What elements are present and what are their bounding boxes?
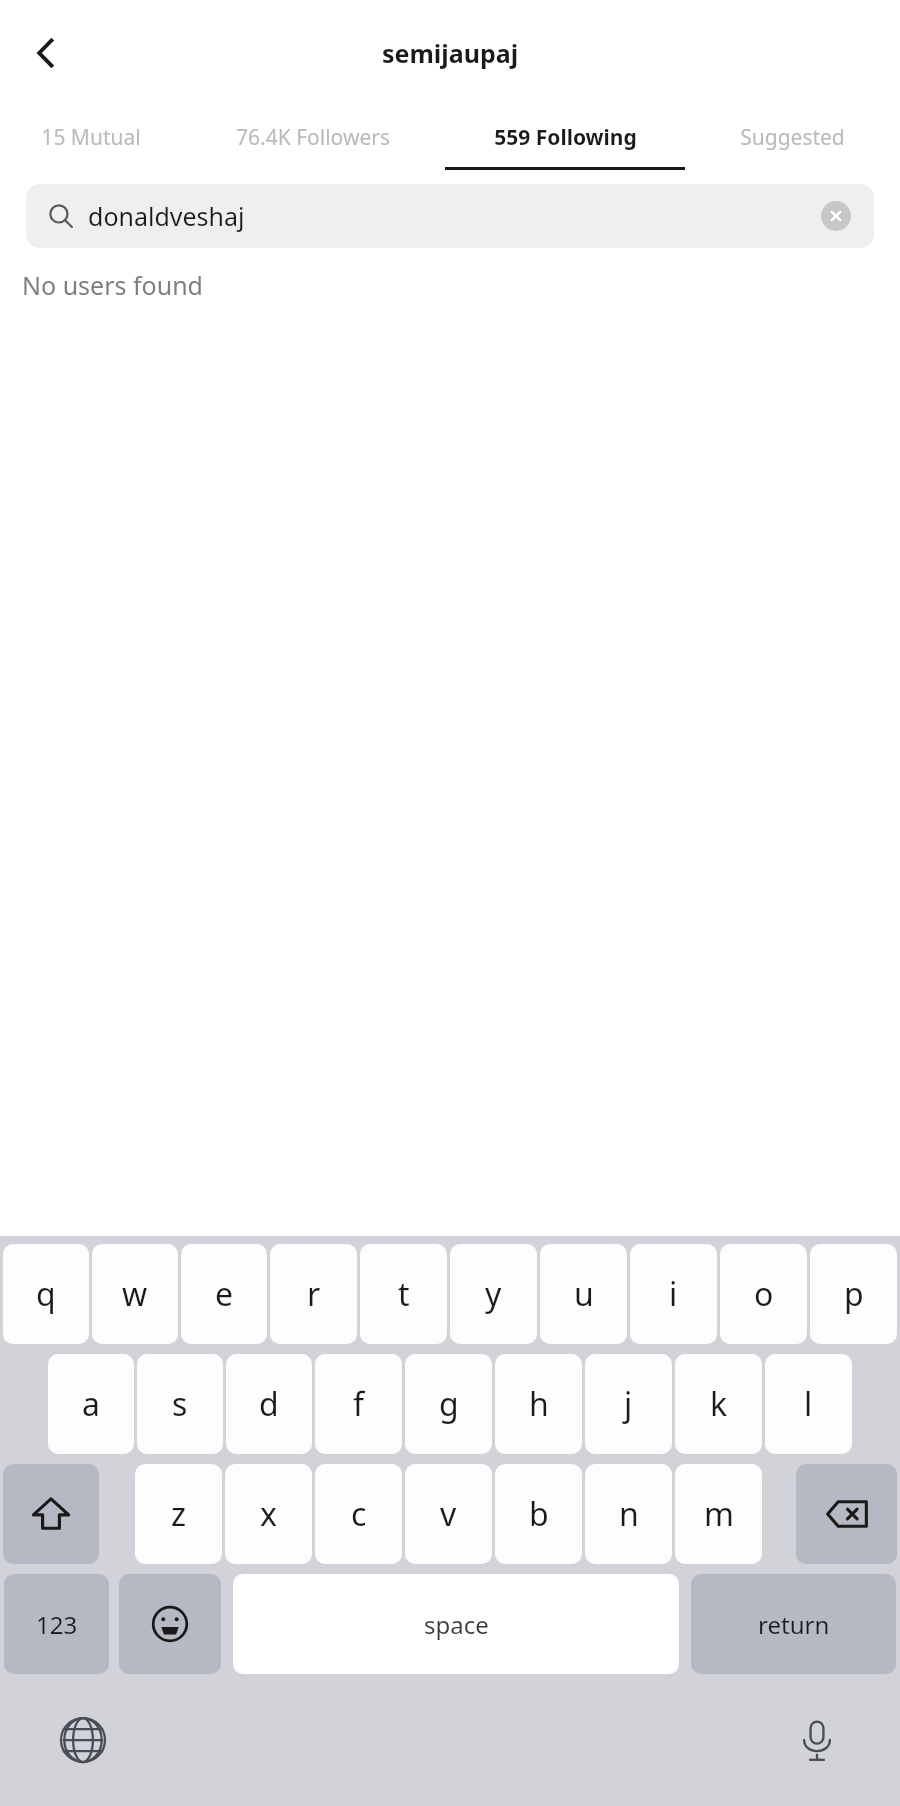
button[interactable]: w: [92, 1244, 178, 1344]
staticText: No users found: [22, 268, 203, 302]
staticText: h: [529, 1382, 549, 1426]
staticText: n: [619, 1492, 639, 1536]
staticText: t: [398, 1272, 410, 1316]
button[interactable]: h: [495, 1354, 582, 1454]
staticText: m: [704, 1492, 734, 1536]
staticText: k: [710, 1382, 728, 1426]
staticText: 559 Following: [494, 123, 637, 152]
button[interactable]: g: [405, 1354, 492, 1454]
staticText: u: [574, 1272, 594, 1316]
button[interactable]: c: [315, 1464, 402, 1564]
button[interactable]: z: [135, 1464, 222, 1564]
button[interactable]: m: [675, 1464, 762, 1564]
staticText: donaldveshaj: [88, 199, 245, 233]
button[interactable]: o: [720, 1244, 807, 1344]
button[interactable]: Suggested: [685, 105, 900, 170]
staticText: z: [171, 1492, 187, 1536]
staticText: o: [754, 1272, 774, 1316]
staticText: d: [259, 1382, 279, 1426]
button[interactable]: n: [585, 1464, 672, 1564]
staticText: b: [529, 1492, 549, 1536]
button[interactable]: return: [691, 1574, 896, 1674]
button[interactable]: j: [585, 1354, 672, 1454]
button[interactable]: s: [137, 1354, 223, 1454]
button[interactable]: p: [810, 1244, 897, 1344]
staticText: a: [82, 1382, 100, 1426]
staticText: g: [439, 1382, 459, 1426]
staticText: v: [440, 1492, 457, 1536]
staticText: e: [215, 1272, 234, 1316]
button[interactable]: u: [540, 1244, 627, 1344]
button[interactable]: q: [3, 1244, 89, 1344]
button[interactable]: space: [233, 1574, 679, 1674]
button[interactable]: t: [360, 1244, 447, 1344]
staticText: r: [307, 1272, 321, 1316]
button[interactable]: Change keyboard language: [48, 1705, 118, 1775]
button[interactable]: 123: [4, 1574, 109, 1674]
staticText: p: [844, 1272, 864, 1316]
button[interactable]: Emoji: [119, 1574, 221, 1674]
button[interactable]: v: [405, 1464, 492, 1564]
staticText: y: [485, 1272, 502, 1316]
staticText: w: [122, 1272, 148, 1316]
button[interactable]: d: [226, 1354, 312, 1454]
staticText: semijaupaj: [382, 36, 519, 70]
staticText: 76.4K Followers: [236, 123, 390, 152]
button[interactable]: Voice input: [782, 1705, 852, 1775]
button[interactable]: b: [495, 1464, 582, 1564]
button[interactable]: y: [450, 1244, 537, 1344]
staticText: l: [804, 1382, 813, 1426]
staticText: Suggested: [740, 123, 845, 152]
staticText: return: [758, 1608, 830, 1641]
button[interactable]: r: [270, 1244, 357, 1344]
button[interactable]: donaldveshaj: [26, 184, 874, 248]
staticText: 123: [36, 1608, 78, 1641]
button[interactable]: Clear search: [820, 200, 852, 232]
staticText: 15 Mutual: [41, 123, 141, 152]
staticText: space: [424, 1608, 489, 1641]
button[interactable]: Shift: [3, 1464, 99, 1564]
button[interactable]: 76.4K Followers: [181, 105, 445, 170]
button[interactable]: k: [675, 1354, 762, 1454]
button[interactable]: f: [315, 1354, 402, 1454]
staticText: q: [36, 1272, 56, 1316]
button[interactable]: Back: [10, 17, 82, 89]
staticText: x: [260, 1492, 277, 1536]
staticText: i: [669, 1272, 678, 1316]
button[interactable]: 15 Mutual: [0, 105, 181, 170]
button[interactable]: l: [765, 1354, 852, 1454]
button[interactable]: x: [225, 1464, 312, 1564]
button[interactable]: a: [48, 1354, 134, 1454]
staticText: s: [172, 1382, 188, 1426]
staticText: f: [353, 1382, 365, 1426]
button[interactable]: 559 Following: [445, 105, 685, 170]
button[interactable]: e: [181, 1244, 267, 1344]
staticText: c: [351, 1492, 367, 1536]
button[interactable]: i: [630, 1244, 717, 1344]
staticText: j: [624, 1382, 633, 1426]
button[interactable]: Backspace: [796, 1464, 897, 1564]
